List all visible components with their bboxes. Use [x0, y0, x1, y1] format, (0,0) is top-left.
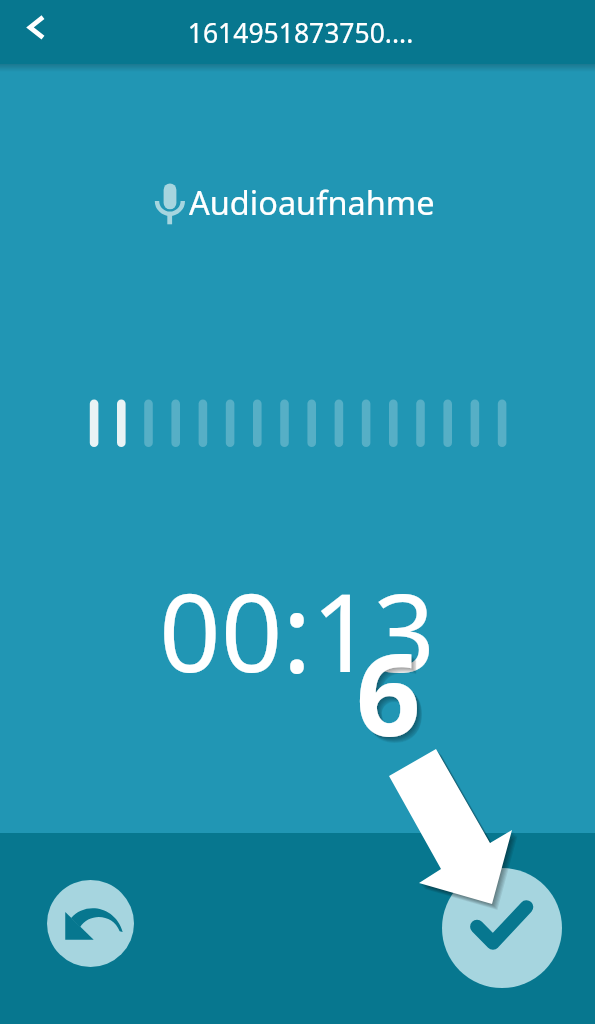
- button[interactable]: Undo: [47, 880, 134, 967]
- staticText: 6: [360, 619, 425, 773]
- staticText: Audioaufnahme: [189, 180, 435, 224]
- staticText: 6: [361, 620, 426, 774]
- staticText: 1614951873750....: [3, 15, 595, 51]
- staticText: 6: [357, 616, 422, 770]
- staticText: 6: [356, 615, 421, 769]
- button[interactable]: Back: [0, 0, 64, 64]
- staticText: 6: [358, 617, 423, 771]
- staticText: 00:13: [159, 557, 436, 704]
- staticText: 6: [361, 621, 426, 775]
- staticText: 6: [359, 618, 424, 772]
- button[interactable]: Done: [442, 868, 562, 988]
